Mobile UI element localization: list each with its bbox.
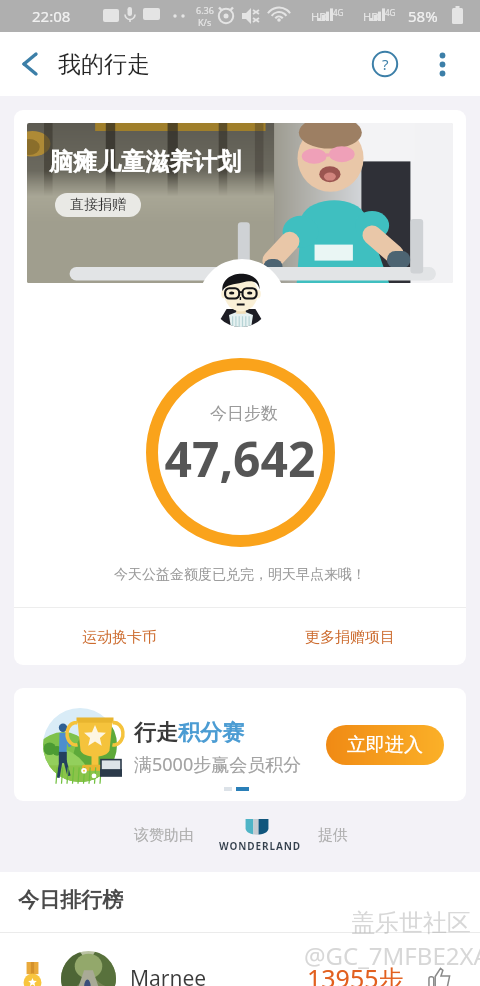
staticText: 运动换卡币 xyxy=(82,628,157,647)
button[interactable]: 更多捐赠项目 xyxy=(297,620,403,655)
button[interactable]: Profile xyxy=(211,267,271,327)
staticText: @GC_7MFBE2XA xyxy=(304,939,480,972)
button[interactable]: 直接捐赠 xyxy=(55,193,141,217)
staticText: 该赞助由 xyxy=(134,826,194,845)
staticText: 积分赛 xyxy=(178,719,244,747)
staticText: 立即进入 xyxy=(347,733,423,757)
button[interactable]: 脑瘫儿童滋养计划 xyxy=(27,123,453,283)
staticText: 今日步数 xyxy=(210,403,278,424)
staticText: 盖乐世社区 xyxy=(351,908,471,938)
staticText: 47,642 xyxy=(14,426,466,491)
button[interactable]: Like xyxy=(428,966,452,986)
staticText: 今日排行榜 xyxy=(18,887,123,913)
staticText: 13955步 xyxy=(307,961,404,986)
staticText: WONDERLAND xyxy=(219,839,302,853)
staticText: 4G xyxy=(333,7,344,18)
button[interactable]: 立即进入 xyxy=(326,725,444,765)
button[interactable]: More options xyxy=(422,44,463,85)
staticText: HD xyxy=(311,9,328,24)
staticText: 行走 xyxy=(134,719,178,747)
staticText: 提供 xyxy=(318,826,348,845)
button[interactable]: Marnee xyxy=(0,933,480,986)
staticText: 我的行走 xyxy=(58,50,150,79)
staticText: 直接捐赠 xyxy=(70,196,126,214)
button[interactable]: 运动换卡币 xyxy=(74,620,165,655)
staticText: 6.36 xyxy=(196,4,214,16)
button[interactable]: Back xyxy=(5,40,53,88)
staticText: 今天公益金额度已兑完，明天早点来哦！ xyxy=(14,566,466,584)
staticText: 22:08 xyxy=(32,6,71,26)
staticText: 58% xyxy=(408,6,438,26)
staticText: 满5000步赢会员积分 xyxy=(134,752,302,777)
staticText: 脑瘫儿童滋养计划 xyxy=(49,147,241,177)
staticText: ? xyxy=(382,54,389,74)
button[interactable]: Help xyxy=(365,44,405,84)
staticText: 更多捐赠项目 xyxy=(305,628,395,647)
staticText: Marnee xyxy=(130,964,207,986)
button[interactable]: 行走 xyxy=(14,688,466,801)
staticText: K/s xyxy=(198,16,212,28)
staticText: HD xyxy=(363,9,380,24)
staticText: 4G xyxy=(385,7,396,18)
